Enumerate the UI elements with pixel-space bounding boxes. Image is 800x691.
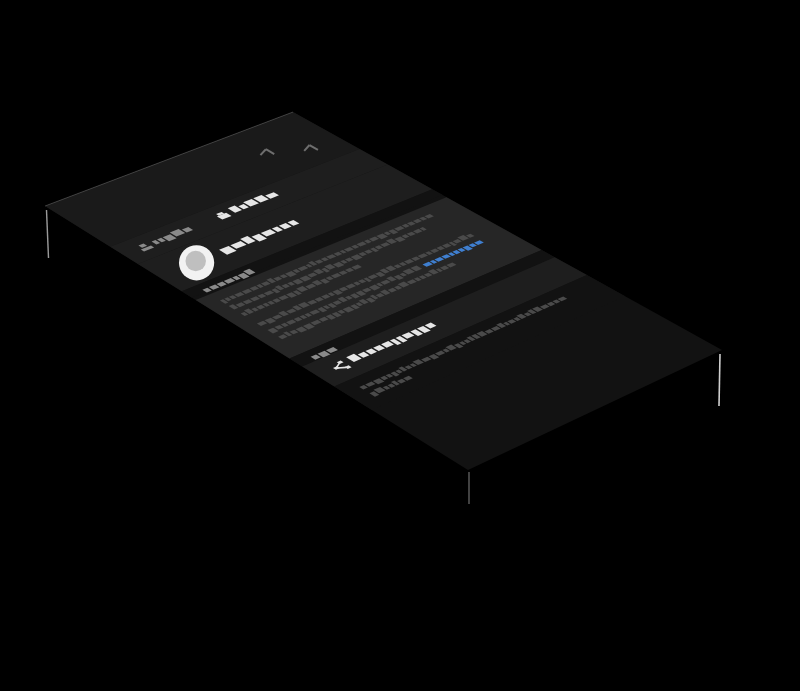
button[interactable]: UniVault account screen [0, 0, 800, 691]
